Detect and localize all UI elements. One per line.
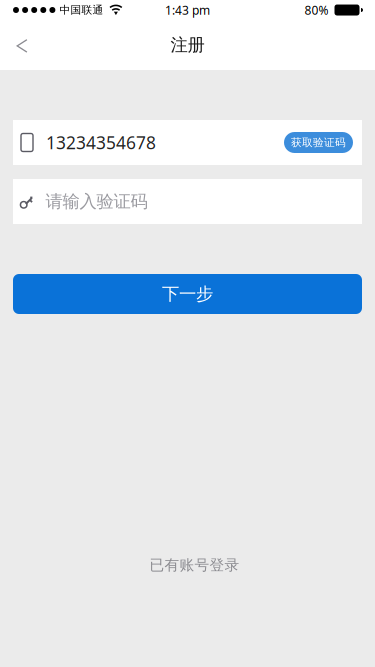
staticText: 获取验证码	[291, 136, 346, 149]
staticText: 下一步	[162, 283, 213, 305]
staticText: 1:43 pm	[165, 2, 210, 18]
button[interactable]: 下一步	[13, 274, 362, 314]
staticText: 80%	[304, 2, 328, 18]
staticText: 请输入验证码	[45, 191, 147, 212]
staticText: 13234354678	[46, 131, 156, 154]
button[interactable]: Back	[0, 22, 44, 68]
button[interactable]: 获取验证码	[284, 132, 353, 153]
button[interactable]: 已有账号登录	[139, 546, 249, 584]
staticText: 中国联通	[59, 3, 103, 16]
staticText: 已有账号登录	[149, 556, 239, 574]
staticText: 注册	[170, 34, 204, 56]
